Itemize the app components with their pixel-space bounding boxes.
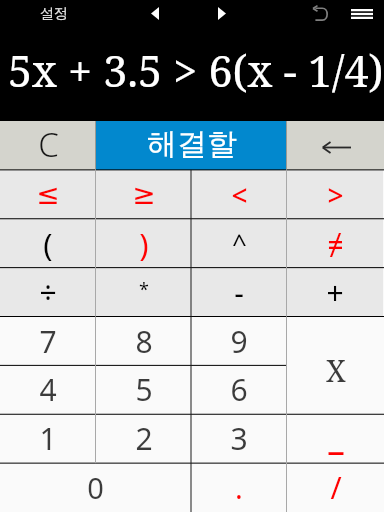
staticText: * (139, 277, 149, 302)
button[interactable]: * (96, 268, 192, 317)
button[interactable]: ( (0, 219, 96, 268)
button[interactable]: 8 (96, 317, 192, 366)
button[interactable]: ≥ (96, 170, 192, 219)
button[interactable]: + (287, 268, 383, 317)
button[interactable]: ) (96, 219, 192, 268)
staticText: 8 (135, 321, 153, 362)
button[interactable]: > (287, 170, 383, 219)
button[interactable]: 7 (0, 317, 96, 366)
button[interactable]: 5 (96, 365, 192, 414)
staticText: 5x + 3.5 > 6(x - 1/4) (8, 41, 384, 100)
button[interactable]: 4 (0, 365, 96, 414)
button[interactable]: Undo (302, 0, 338, 27)
staticText: C (38, 122, 59, 167)
staticText: 4 (39, 369, 57, 410)
staticText: 해결할 (147, 125, 237, 163)
button[interactable]: ^ (191, 219, 287, 268)
button[interactable]: X (287, 317, 384, 415)
button[interactable]: 3 (191, 414, 287, 463)
staticText: - (234, 272, 244, 313)
staticText: ( (43, 223, 53, 265)
button[interactable]: Previous (136, 0, 174, 27)
button[interactable]: 설정 (14, 0, 94, 27)
button[interactable]: Backspace (287, 121, 384, 170)
button[interactable]: Next (203, 0, 241, 27)
staticText: ≠ (327, 225, 344, 263)
button[interactable]: < (191, 170, 287, 219)
staticText: . (235, 468, 243, 507)
staticText: 6 (230, 369, 248, 410)
button[interactable]: ≤ (0, 170, 96, 219)
staticText: 1 (39, 418, 57, 459)
button[interactable]: - (191, 268, 287, 317)
staticText: 0 (87, 468, 104, 507)
button[interactable]: ≠ (287, 219, 383, 268)
staticText: 9 (230, 321, 248, 362)
staticText: < (231, 176, 248, 214)
staticText: 3 (230, 418, 248, 459)
staticText: ≤ (36, 178, 60, 211)
button[interactable]: 2 (96, 414, 192, 463)
button[interactable]: 0 (0, 463, 191, 512)
staticText: 설정 (40, 5, 68, 23)
button[interactable]: C (0, 121, 96, 170)
button[interactable]: . (191, 463, 287, 512)
staticText: + (326, 272, 344, 313)
staticText: / (330, 467, 342, 508)
button[interactable]: ÷ (0, 268, 96, 317)
staticText: ) (139, 223, 149, 265)
button[interactable]: 1 (0, 414, 96, 463)
staticText: ≥ (132, 178, 156, 211)
staticText: – (327, 425, 345, 474)
button[interactable]: 9 (191, 317, 287, 366)
button[interactable]: 6 (191, 365, 287, 414)
button[interactable]: 해결할 (96, 121, 287, 170)
button[interactable]: – (287, 414, 384, 463)
staticText: > (327, 176, 344, 214)
staticText: 7 (39, 321, 57, 362)
staticText: 2 (135, 418, 153, 459)
staticText: X (326, 350, 346, 391)
staticText: 5 (135, 369, 153, 410)
staticText: ^ (232, 225, 247, 260)
button[interactable]: Menu (346, 0, 378, 27)
button[interactable]: / (287, 463, 384, 512)
staticText: ÷ (39, 272, 57, 313)
